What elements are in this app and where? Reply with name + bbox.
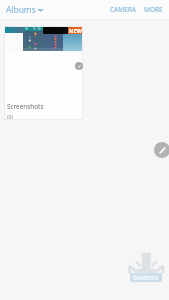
staticText: NEW xyxy=(69,27,82,34)
button[interactable]: NEW xyxy=(4,26,83,120)
button[interactable]: Options xyxy=(75,62,83,70)
button[interactable]: MORE xyxy=(140,1,169,18)
staticText: (0) xyxy=(7,113,14,120)
staticText: Screenshots xyxy=(7,102,44,111)
staticText: Gudem xyxy=(133,273,159,282)
staticText: CAMERA xyxy=(110,5,136,14)
button[interactable]: Edit xyxy=(154,142,169,158)
staticText: MORE xyxy=(144,5,163,14)
button[interactable]: CAMERA xyxy=(106,1,140,18)
button[interactable]: Albums xyxy=(0,1,50,18)
staticText: Albums xyxy=(6,4,36,15)
